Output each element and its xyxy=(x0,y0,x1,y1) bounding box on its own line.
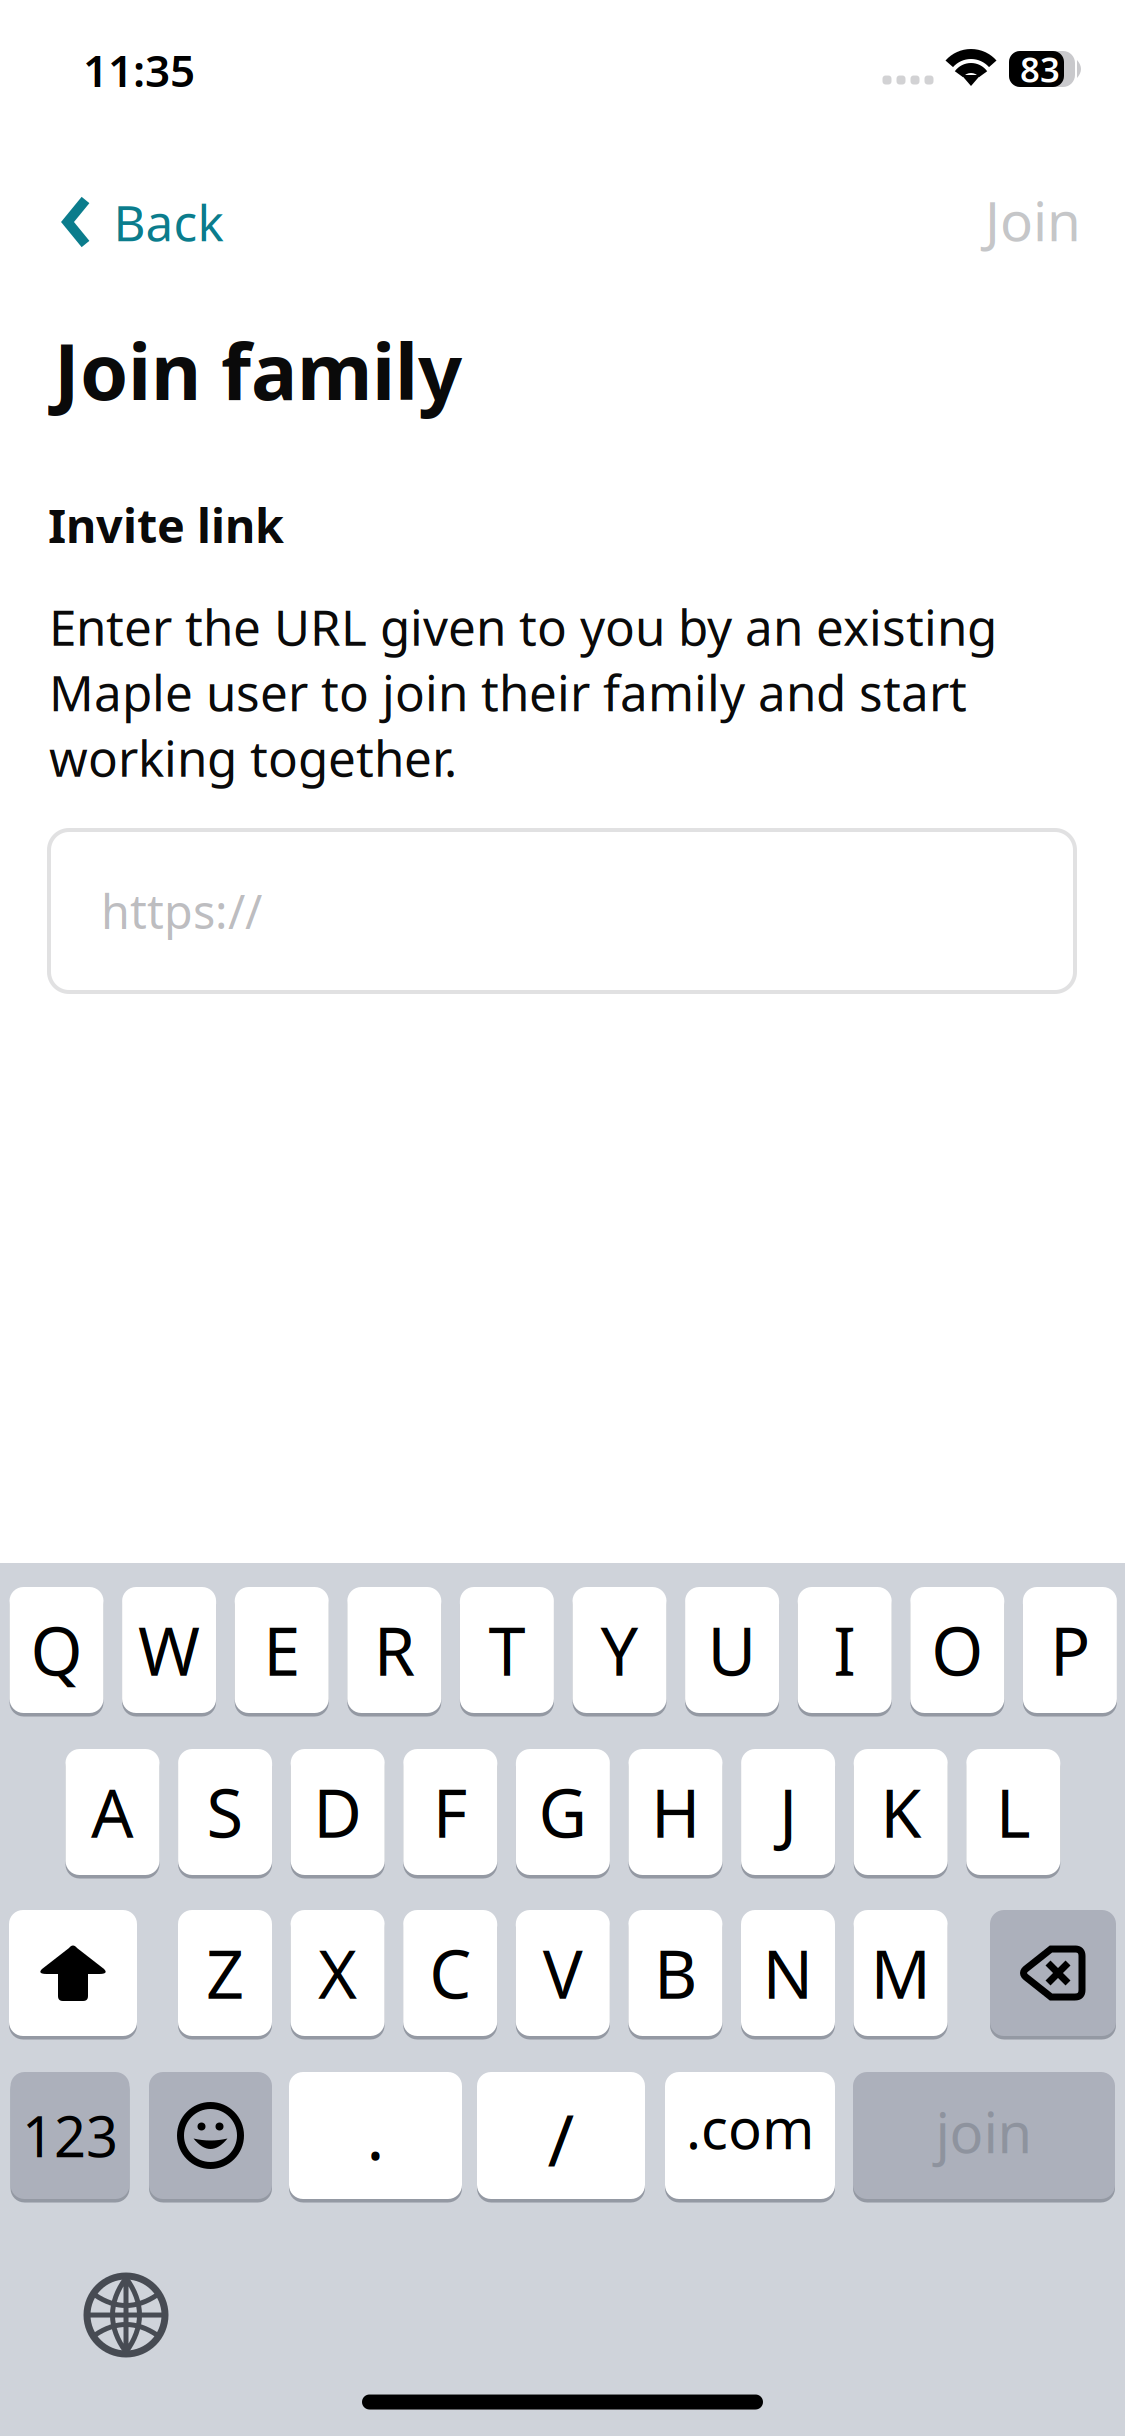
button[interactable]: Emoji xyxy=(149,2072,272,2199)
button[interactable]: J xyxy=(741,1749,835,1875)
button[interactable]: R xyxy=(347,1587,441,1713)
staticText: J xyxy=(779,1768,797,1856)
staticText: K xyxy=(880,1768,921,1856)
staticText: X xyxy=(318,1929,357,2017)
staticText: D xyxy=(313,1768,362,1856)
staticText: U xyxy=(708,1606,757,1694)
button[interactable]: Next keyboard xyxy=(78,2267,174,2363)
button[interactable]: D xyxy=(291,1749,385,1875)
button[interactable]: Z xyxy=(178,1910,272,2036)
button[interactable]: T xyxy=(460,1587,554,1713)
button[interactable]: . xyxy=(289,2072,462,2199)
button[interactable]: S xyxy=(178,1749,272,1875)
button[interactable]: Join xyxy=(959,158,1107,282)
button[interactable]: M xyxy=(854,1910,948,2036)
button[interactable]: L xyxy=(966,1749,1060,1875)
button[interactable]: 123 xyxy=(10,2072,129,2199)
button[interactable]: B xyxy=(628,1910,722,2036)
staticText: .com xyxy=(686,2090,814,2165)
staticText: Z xyxy=(206,1929,244,2017)
staticText: Join family xyxy=(54,319,462,421)
staticText: 123 xyxy=(22,2098,118,2173)
button[interactable]: A xyxy=(65,1749,159,1875)
staticText: C xyxy=(429,1929,471,2017)
button[interactable]: H xyxy=(628,1749,722,1875)
button[interactable]: O xyxy=(910,1587,1004,1713)
button[interactable]: Shift xyxy=(9,1910,137,2036)
button[interactable]: C xyxy=(403,1910,497,2036)
staticText: E xyxy=(263,1606,300,1694)
staticText: Q xyxy=(30,1606,82,1694)
staticText: / xyxy=(547,2091,574,2186)
button[interactable]: Q xyxy=(9,1587,103,1713)
staticText: V xyxy=(543,1929,583,2017)
button[interactable]: Back xyxy=(38,165,245,279)
staticText: Invite link xyxy=(48,494,284,556)
staticText: T xyxy=(488,1606,525,1694)
button[interactable]: P xyxy=(1023,1587,1117,1713)
staticText: W xyxy=(138,1606,200,1694)
staticText: O xyxy=(931,1606,983,1694)
staticText: A xyxy=(91,1768,134,1856)
button[interactable]: F xyxy=(403,1749,497,1875)
staticText: H xyxy=(651,1768,700,1856)
staticText: . xyxy=(366,2090,384,2179)
button[interactable]: I xyxy=(798,1587,892,1713)
button[interactable]: Y xyxy=(572,1587,666,1713)
staticText: Back xyxy=(113,189,223,255)
button[interactable]: E xyxy=(235,1587,329,1713)
staticText: Y xyxy=(600,1606,638,1694)
staticText: G xyxy=(538,1768,587,1856)
button[interactable]: V xyxy=(516,1910,610,2036)
staticText: 83 xyxy=(1020,46,1060,92)
button[interactable]: X xyxy=(291,1910,385,2036)
staticText: P xyxy=(1050,1606,1090,1694)
button[interactable]: join xyxy=(853,2072,1115,2199)
staticText: R xyxy=(374,1606,415,1694)
button[interactable]: K xyxy=(854,1749,948,1875)
staticText: M xyxy=(871,1929,931,2017)
staticText: join xyxy=(935,2094,1032,2169)
staticText: F xyxy=(433,1768,468,1856)
staticText: https:// xyxy=(101,880,262,942)
staticText: Join xyxy=(985,184,1081,256)
button[interactable]: .com xyxy=(665,2072,835,2199)
button[interactable]: W xyxy=(122,1587,216,1713)
staticText: 11:35 xyxy=(83,41,195,99)
button[interactable]: N xyxy=(741,1910,835,2036)
staticText: S xyxy=(207,1768,244,1856)
button[interactable]: G xyxy=(516,1749,610,1875)
button[interactable]: U xyxy=(685,1587,779,1713)
staticText: L xyxy=(996,1768,1031,1856)
staticText: N xyxy=(762,1929,813,2017)
button[interactable]: Delete xyxy=(990,1910,1116,2036)
button[interactable]: / xyxy=(477,2072,645,2199)
button[interactable]: Invite link, https:// xyxy=(49,830,1075,992)
staticText: Enter the URL given to you by an existin… xyxy=(49,594,997,790)
staticText: B xyxy=(654,1929,697,2017)
staticText: I xyxy=(833,1606,856,1694)
